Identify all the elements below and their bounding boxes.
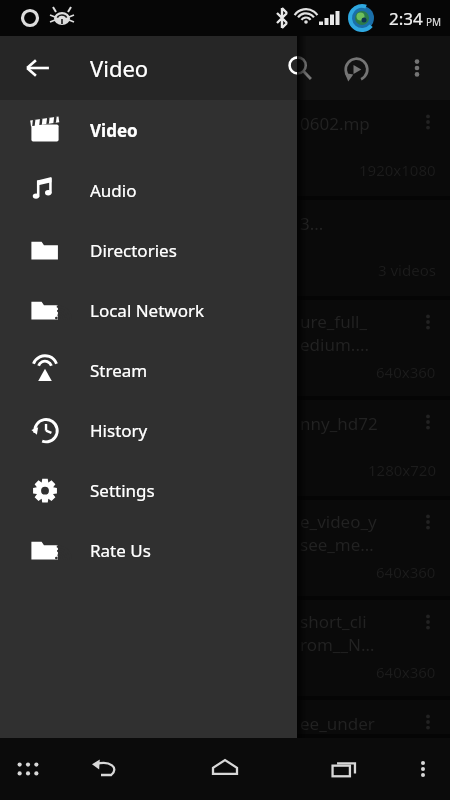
button[interactable]: Stream <box>0 340 297 400</box>
button[interactable]: Audio <box>0 160 297 220</box>
staticText: History <box>90 419 148 442</box>
button[interactable]: Resume playback <box>328 40 384 96</box>
staticText: short_cli <box>300 610 367 633</box>
staticText: 640x360 <box>376 662 436 682</box>
staticText: Stream <box>90 359 148 382</box>
staticText: edium.... <box>300 333 370 356</box>
staticText: see_me… <box>300 533 374 556</box>
button[interactable]: Menu <box>4 745 52 793</box>
button[interactable]: 3... <box>0 200 450 296</box>
button[interactable]: ure_full_ <box>0 300 450 396</box>
button[interactable]: Back <box>10 40 66 96</box>
staticText: e_video_y <box>300 510 377 533</box>
staticText: Video <box>90 53 149 83</box>
staticText: ee_under <box>300 712 375 734</box>
button[interactable]: History <box>0 400 297 460</box>
button[interactable]: 0602.mp <box>0 100 450 196</box>
staticText: Video <box>90 119 138 142</box>
button[interactable]: ee_under <box>0 700 450 734</box>
staticText: 2:34 <box>389 7 423 30</box>
button[interactable]: Rate Us <box>0 520 297 580</box>
button[interactable]: Local Network <box>0 280 297 340</box>
button[interactable]: Directories <box>0 220 297 280</box>
button[interactable]: Settings <box>0 460 297 520</box>
button[interactable]: e_video_y <box>0 500 450 596</box>
staticText: 0602.mp <box>300 112 370 135</box>
staticText: 640x360 <box>376 562 436 582</box>
staticText: 640x360 <box>376 362 436 382</box>
staticText: Directories <box>90 239 177 262</box>
staticText: PM <box>426 15 442 29</box>
button[interactable]: More options <box>400 746 446 792</box>
staticText: rom__N… <box>300 633 375 656</box>
button[interactable]: Back <box>76 741 132 797</box>
staticText: Rate Us <box>90 539 151 562</box>
staticText: Audio <box>90 179 137 202</box>
staticText: 1280x720 <box>368 460 436 480</box>
button[interactable]: Video <box>0 100 297 160</box>
staticText: 1920x1080 <box>359 160 436 180</box>
button[interactable]: Recent apps <box>318 741 374 797</box>
button[interactable]: short_cli <box>0 600 450 696</box>
staticText: Settings <box>90 479 155 502</box>
staticText: 3 videos <box>378 260 436 280</box>
button[interactable]: Search <box>272 40 328 96</box>
button[interactable]: More options <box>392 43 442 93</box>
staticText: Local Network <box>90 299 205 322</box>
staticText: ure_full_ <box>300 310 367 333</box>
button[interactable]: Home <box>197 741 253 797</box>
button[interactable]: nny_hd72 <box>0 400 450 496</box>
staticText: nny_hd72 <box>300 412 378 435</box>
staticText: 3... <box>300 212 324 235</box>
